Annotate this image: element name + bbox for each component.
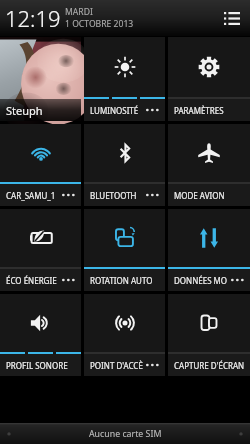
button[interactable]: Rotation auto — [84, 209, 165, 291]
staticText: Steuph — [6, 103, 43, 118]
staticText: BLUETOOTH — [90, 190, 137, 201]
button[interactable]: Capture d'écran — [168, 294, 250, 376]
button[interactable]: Aucune carte SIM — [0, 423, 250, 444]
button[interactable]: Bluetooth — [84, 124, 165, 206]
button[interactable]: Mode avion — [168, 124, 250, 206]
staticText: POINT D'ACCÈ — [90, 360, 143, 371]
staticText: Aucune carte SIM — [89, 428, 162, 440]
button[interactable]: Données mobiles — [168, 209, 250, 291]
button[interactable]: Éco énergie — [0, 209, 81, 291]
staticText: CAPTURE D'ÉCRAN — [174, 360, 245, 371]
button[interactable]: Wi-Fi — [0, 124, 81, 206]
staticText: 1 OCTOBRE 2013 — [65, 18, 134, 30]
staticText: LUMINOSITÉ — [90, 105, 139, 116]
staticText: ROTATION AUTO — [90, 275, 153, 286]
button[interactable]: Profil Steuph — [0, 37, 81, 121]
button[interactable]: Paramètres — [168, 37, 250, 121]
staticText: PROFIL SONORE — [6, 360, 68, 371]
button[interactable]: Liste — [219, 5, 245, 31]
staticText: 12:19 — [5, 3, 61, 33]
staticText: ÉCO ÉNERGIE — [6, 275, 57, 286]
button[interactable]: Luminosité — [84, 37, 165, 121]
staticText: MODE AVION — [174, 190, 225, 201]
staticText: MARDI — [65, 6, 93, 18]
staticText: CAR_SAMU_1 — [6, 190, 56, 201]
button[interactable]: Profil sonore — [0, 294, 81, 376]
staticText: DONNÉES MO — [174, 275, 228, 286]
button[interactable]: Point d'accès — [84, 294, 165, 376]
staticText: PARAMÈTRES — [174, 105, 224, 116]
